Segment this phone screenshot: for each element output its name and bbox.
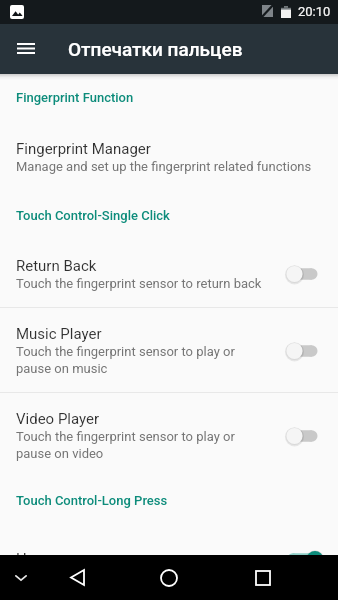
staticText: 20:10: [298, 4, 331, 19]
button[interactable]: Switch off: [280, 257, 322, 291]
staticText: Video Player: [16, 410, 100, 428]
other: No signal: [262, 5, 273, 17]
button[interactable]: Recent apps: [238, 555, 288, 600]
button[interactable]: Return Back: [0, 257, 338, 307]
button[interactable]: Open navigation menu: [8, 30, 44, 66]
button[interactable]: Switch off: [280, 419, 322, 453]
staticText: Touch the fingerprint sensor to return b…: [16, 276, 262, 291]
button[interactable]: Hide keyboard: [4, 555, 38, 600]
staticText: Manage and set up the fingerprint relate…: [16, 159, 312, 174]
staticText: Return Back: [16, 257, 97, 275]
button[interactable]: Home: [0, 542, 338, 555]
staticText: Fingerprint Function: [16, 90, 134, 105]
staticText: Touch Control-Long Press: [16, 493, 168, 508]
staticText: Fingerprint Manager: [16, 140, 151, 158]
staticText: Touch the fingerprint sensor to play or …: [16, 429, 235, 462]
staticText: Touch Control-Single Click: [16, 208, 170, 223]
other: Battery: [281, 6, 291, 18]
button[interactable]: Music Player: [0, 308, 338, 392]
button[interactable]: Back: [52, 555, 102, 600]
button[interactable]: Video Player: [0, 393, 338, 462]
button[interactable]: Fingerprint Manager: [0, 140, 338, 174]
staticText: Music Player: [16, 325, 102, 343]
staticText: Touch the fingerprint sensor to play or …: [16, 344, 235, 377]
staticText: Отпечатки пальцев: [68, 38, 243, 60]
other: Screenshot captured: [10, 5, 24, 19]
staticText: Home: [16, 550, 57, 555]
button[interactable]: Switch off: [280, 334, 322, 368]
button[interactable]: Switch on: [280, 542, 322, 555]
button[interactable]: Home: [144, 555, 194, 600]
